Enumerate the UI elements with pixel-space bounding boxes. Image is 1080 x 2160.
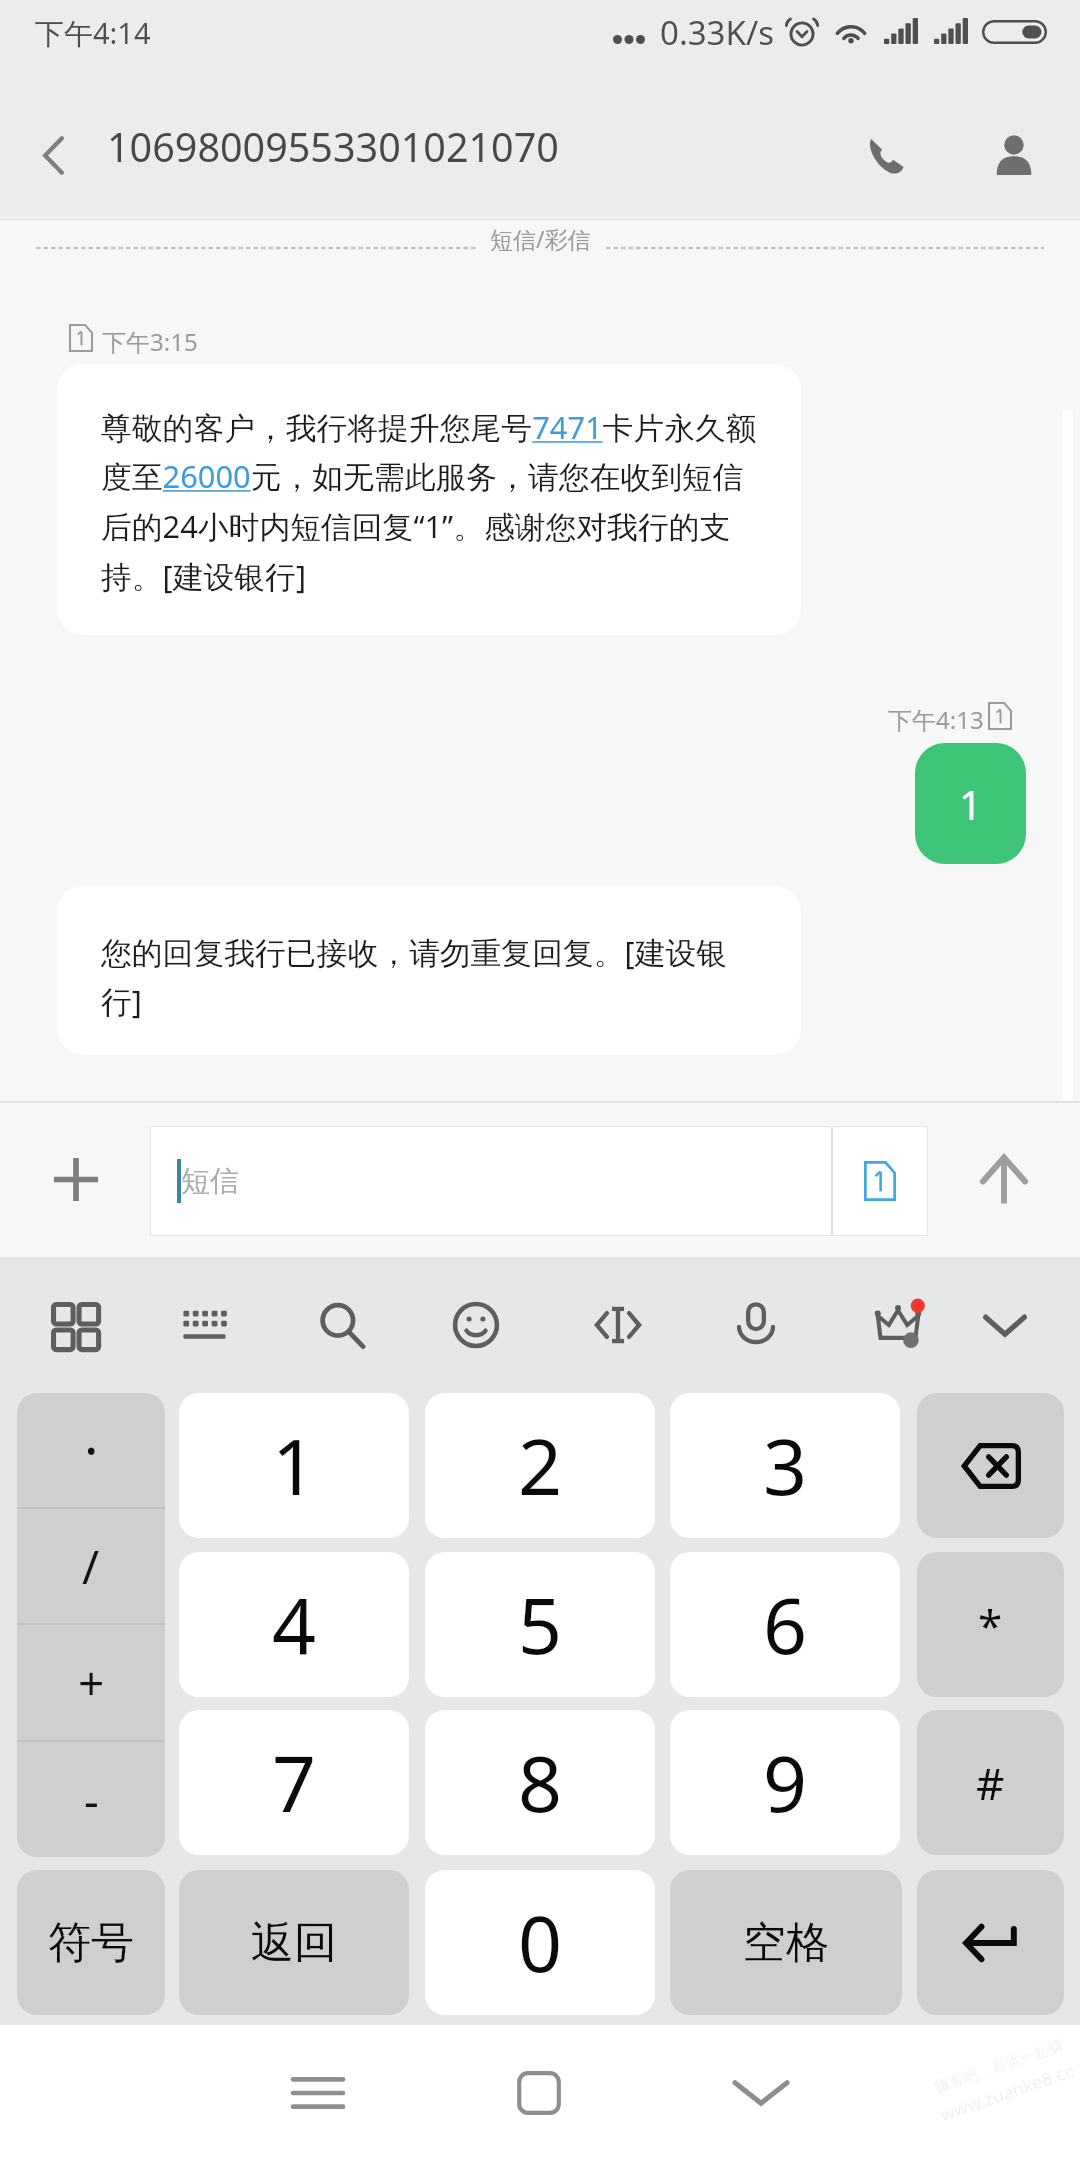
staticText: 6 <box>763 1572 808 1677</box>
button[interactable]: + <box>17 1625 165 1740</box>
staticText: 赚客吧，有奖一起赚！ <box>932 2034 1071 2098</box>
button[interactable]: Back <box>0 90 107 220</box>
button[interactable]: Call <box>825 90 947 220</box>
button[interactable]: Backspace <box>917 1393 1064 1538</box>
button[interactable]: Cursor <box>556 1257 680 1392</box>
staticText: * <box>978 1595 1003 1655</box>
staticText: + <box>78 1651 105 1714</box>
staticText: 3 <box>763 1413 808 1518</box>
button[interactable]: Contact <box>947 90 1080 220</box>
staticText: 1 <box>959 777 982 831</box>
staticText: 7 <box>272 1730 317 1835</box>
button[interactable]: Send <box>928 1101 1080 1257</box>
button[interactable]: 3 <box>670 1393 900 1538</box>
staticText: 行] <box>101 980 142 1022</box>
staticText: 10698009553301021070 <box>107 120 825 174</box>
staticText: 短信 <box>181 1163 239 1200</box>
button[interactable]: # <box>917 1710 1064 1855</box>
staticText: 0 <box>518 1890 563 1995</box>
button[interactable]: Emoji <box>414 1257 538 1392</box>
button[interactable]: 5 <box>425 1552 655 1697</box>
button[interactable]: Premium <box>836 1257 960 1392</box>
staticText: 下午3:15 <box>102 325 198 358</box>
button[interactable]: 短信 <box>151 1127 927 1235</box>
button[interactable]: 空格 <box>670 1870 902 2015</box>
button[interactable]: Add attachment <box>0 1101 151 1257</box>
staticText: 返回 <box>251 1916 337 1970</box>
button[interactable]: 8 <box>425 1710 655 1855</box>
button[interactable]: / <box>17 1509 165 1623</box>
button[interactable]: 尊敬的客户，我行将提升您尾号7471卡片永久额 <box>57 364 801 635</box>
staticText: 符号 <box>48 1916 134 1970</box>
button[interactable]: 您的回复我行已接收，请勿重复回复。[建设银 <box>57 886 801 1055</box>
button[interactable]: Hide keyboard <box>676 2025 846 2160</box>
button[interactable]: Layouts <box>12 1257 136 1392</box>
button[interactable]: 6 <box>670 1552 900 1697</box>
staticText: 下午4:13 <box>888 703 984 736</box>
button[interactable]: Voice input <box>694 1257 818 1392</box>
staticText: 下午4:14 <box>35 13 151 53</box>
button[interactable]: - <box>17 1742 165 1857</box>
staticText: www.zuanke8.com <box>936 2058 1077 2127</box>
staticText: 度至26000元，如无需此服务，请您在收到短信 <box>101 455 744 497</box>
button[interactable]: Home <box>454 2025 624 2160</box>
staticText: 持。[建设银行] <box>101 555 307 597</box>
button[interactable]: SIM 1 <box>833 1127 927 1235</box>
button[interactable]: 符号 <box>17 1870 165 2015</box>
button[interactable]: 9 <box>670 1710 900 1855</box>
staticText: / <box>82 1535 100 1598</box>
staticText: # <box>976 1753 1005 1813</box>
button[interactable]: 1 <box>915 743 1026 864</box>
button[interactable]: * <box>917 1552 1064 1697</box>
button[interactable]: 7 <box>179 1710 409 1855</box>
button[interactable]: · <box>17 1393 165 1507</box>
staticText: · <box>84 1413 99 1487</box>
button[interactable]: Keyboard <box>143 1257 267 1392</box>
staticText: 5 <box>518 1572 563 1677</box>
staticText: 4 <box>272 1572 317 1677</box>
staticText: 尊敬的客户，我行将提升您尾号7471卡片永久额 <box>101 406 757 448</box>
button[interactable]: 0 <box>425 1870 655 2015</box>
staticText: 2 <box>518 1413 563 1518</box>
button[interactable]: Recents <box>233 2025 403 2160</box>
staticText: 8 <box>518 1730 563 1835</box>
staticText: 1 <box>272 1413 317 1518</box>
button[interactable]: Enter <box>917 1870 1064 2015</box>
button[interactable]: 4 <box>179 1552 409 1697</box>
staticText: - <box>84 1768 99 1831</box>
staticText: 短信/彩信 <box>490 223 591 254</box>
staticText: 后的24小时内短信回复“1”。感谢您对我行的支 <box>101 505 731 547</box>
button[interactable]: Hide keyboard <box>943 1257 1067 1392</box>
button[interactable]: 返回 <box>179 1870 409 2015</box>
staticText: 您的回复我行已接收，请勿重复回复。[建设银 <box>101 931 728 973</box>
button[interactable]: Search <box>280 1257 404 1392</box>
staticText: 9 <box>763 1730 808 1835</box>
button[interactable]: 2 <box>425 1393 655 1538</box>
button[interactable]: 1 <box>179 1393 409 1538</box>
staticText: 0.33K/s <box>660 10 774 55</box>
staticText: 空格 <box>743 1916 829 1970</box>
